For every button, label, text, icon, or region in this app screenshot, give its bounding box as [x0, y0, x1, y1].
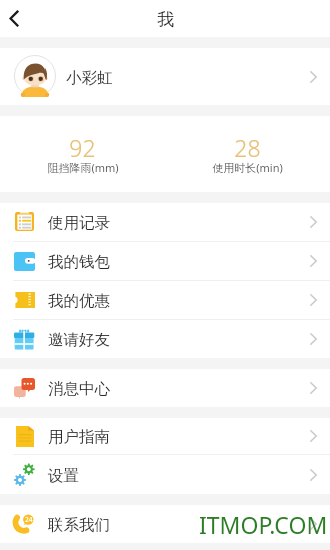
staticText: 92: [69, 132, 96, 163]
staticText: 阻挡降雨(mm): [47, 160, 119, 175]
button[interactable]: 邀请好友: [0, 320, 330, 358]
button[interactable]: Back: [0, 0, 36, 37]
button[interactable]: 消息中心: [0, 369, 330, 407]
button[interactable]: 用户指南: [0, 418, 330, 454]
button[interactable]: 24: [0, 505, 330, 543]
button[interactable]: 小彩虹: [0, 48, 330, 105]
button[interactable]: 我的优惠: [0, 281, 330, 319]
staticText: 28: [234, 132, 261, 163]
staticText: 邀请好友: [48, 330, 110, 350]
button[interactable]: 我的钱包: [0, 242, 330, 280]
staticText: 小彩虹: [66, 68, 113, 88]
staticText: 我的优惠: [48, 291, 110, 311]
staticText: 我的钱包: [48, 252, 110, 272]
staticText: 设置: [48, 466, 79, 486]
button[interactable]: 设置: [0, 455, 330, 494]
staticText: 使用时长(min): [212, 160, 283, 175]
staticText: 消息中心: [48, 379, 110, 399]
staticText: 我: [157, 9, 174, 30]
button[interactable]: 28: [165, 116, 330, 192]
staticText: 24: [25, 515, 33, 524]
staticText: 用户指南: [48, 427, 110, 447]
staticText: ITMOP.COM: [199, 509, 328, 540]
button[interactable]: 92: [0, 116, 165, 192]
staticText: 联系我们: [48, 515, 110, 535]
button[interactable]: 使用记录: [0, 203, 330, 241]
staticText: 使用记录: [48, 213, 110, 233]
